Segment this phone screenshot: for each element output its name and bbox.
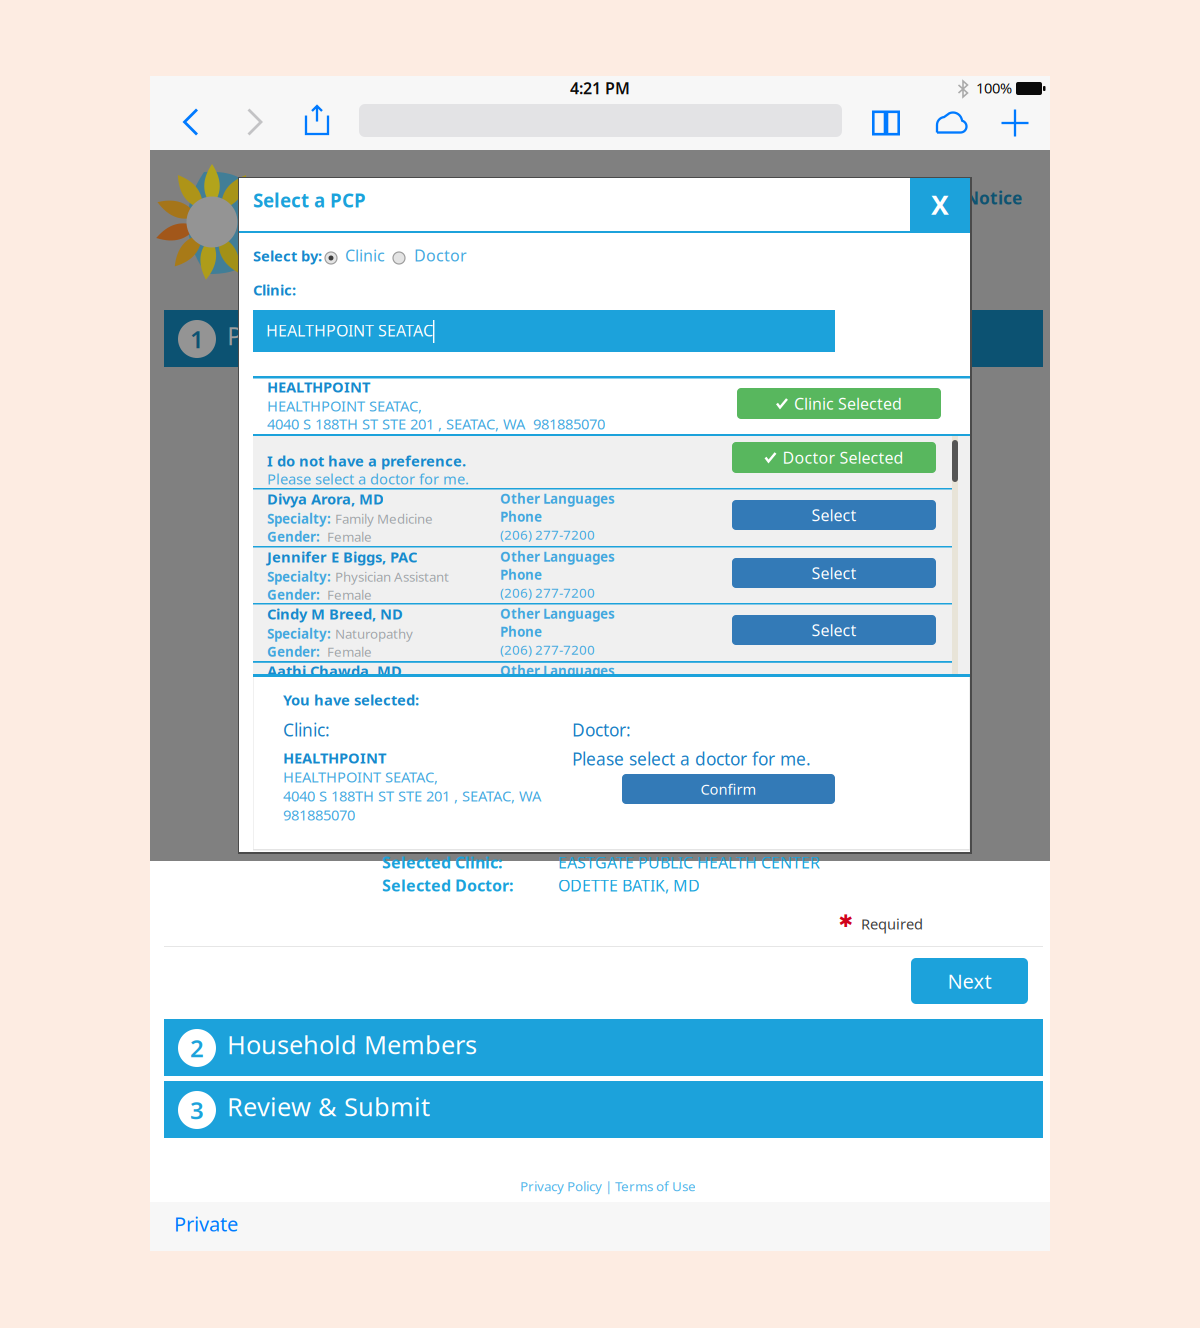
staticText: Selected Doctor: [382, 875, 513, 896]
staticText: Cindy M Breed, ND [267, 604, 403, 624]
staticText: 981885070 [283, 805, 355, 825]
staticText: Gender: [267, 528, 320, 545]
staticText: Divya Arora, MD [267, 489, 384, 509]
staticText: HEALTHPOINT SEATAC [266, 320, 433, 341]
staticText: Household Members [227, 1028, 477, 1061]
staticText: X [931, 187, 949, 222]
staticText: Specialty: [267, 510, 331, 527]
staticText: 1 [190, 323, 204, 355]
staticText: I do not have a preference. [267, 451, 466, 471]
button[interactable]: Select [732, 500, 936, 530]
staticText: Other Languages [500, 490, 615, 507]
staticText: HEALTHPOINT [283, 748, 386, 768]
staticText: Review & Submit [227, 1090, 430, 1123]
button[interactable]: Forward [150, 76, 196, 116]
staticText: Select by: [253, 246, 322, 266]
staticText: Selected Clinic: [382, 852, 502, 873]
staticText: Select [811, 619, 856, 641]
staticText: Family Medicine [335, 510, 433, 527]
staticText: Required [861, 914, 923, 934]
staticText: (206) 277-7200 [500, 641, 595, 658]
staticText: 2 [190, 1032, 204, 1064]
staticText: (206) 277-7200 [500, 526, 595, 543]
staticText: 4040 S 188TH ST STE 201 , SEATAC, WA [283, 786, 541, 806]
staticText: ✱ [838, 911, 853, 931]
staticText: Phone [500, 566, 542, 583]
staticText: Female [327, 643, 372, 660]
button[interactable]: Clinic Selected [737, 388, 941, 419]
staticText: Next [947, 968, 991, 994]
button[interactable]: iCloud Tabs [150, 76, 202, 116]
button[interactable]: Share [150, 76, 196, 116]
staticText: 4:21 PM [570, 77, 630, 99]
staticText: Physician Assistant [335, 568, 449, 585]
staticText: EASTGATE PUBLIC HEALTH CENTER [558, 852, 820, 873]
staticText: Clinic: [253, 280, 296, 300]
staticText: You have selected: [283, 690, 419, 710]
staticText: (206) 277-7200 [500, 584, 595, 601]
staticText: Specialty: [267, 568, 331, 585]
staticText: Other Languages [500, 605, 615, 622]
button[interactable]: New Tab [150, 76, 196, 116]
staticText: Select [811, 504, 856, 526]
staticText: Doctor Selected [782, 447, 903, 468]
staticText: Clinic Selected [794, 393, 902, 414]
staticText: Specialty: [267, 625, 331, 642]
staticText: Gender: [267, 586, 320, 603]
staticText: ODETTE BATIK, MD [558, 875, 700, 896]
staticText: Female [327, 586, 372, 603]
button[interactable]: Select [732, 615, 936, 645]
staticText: PCP Selection [227, 319, 388, 352]
button[interactable]: Select [732, 558, 936, 588]
staticText: Clinic [345, 245, 385, 266]
button[interactable]: Privacy Policy | Terms of Use [150, 861, 550, 881]
button[interactable]: Back [150, 76, 196, 116]
staticText: HEALTHPOINT SEATAC, [267, 396, 422, 416]
staticText: Other Languages [500, 548, 615, 565]
staticText: Privacy Notice [897, 186, 1022, 209]
staticText: HEALTHPOINT SEATAC, [283, 767, 438, 787]
button[interactable]: Confirm [239, 178, 452, 208]
staticText: Select a PCP [253, 188, 366, 213]
button[interactable]: 2 [150, 861, 1029, 918]
staticText: Doctor: [572, 718, 631, 741]
button[interactable]: 3 [150, 861, 1029, 918]
staticText: HEALTHPOINT [267, 377, 370, 397]
staticText: Phone [500, 508, 542, 525]
staticText: Gender: [267, 643, 320, 660]
button[interactable]: Doctor Selected [732, 442, 936, 473]
staticText: Privacy Policy | Terms of Use [520, 1177, 696, 1195]
staticText: Please select a doctor for me. [267, 469, 469, 489]
staticText: 4040 S 188TH ST STE 201 , SEATAC, WA 981… [267, 414, 605, 434]
staticText: Doctor [414, 245, 467, 266]
staticText: Confirm [700, 779, 756, 799]
staticText: Female [327, 528, 372, 545]
staticText: Other Languages [500, 662, 615, 679]
button[interactable]: Close [239, 178, 299, 231]
staticText: Select [811, 562, 856, 584]
staticText: Jennifer E Biggs, PAC [267, 547, 417, 567]
staticText: Aathi Chawda, MD [267, 661, 402, 681]
staticText: 100% [976, 78, 1012, 98]
staticText: Phone [500, 623, 542, 640]
staticText: 3 [190, 1094, 204, 1126]
button[interactable]: Bookmarks [150, 76, 196, 116]
staticText: Please select a doctor for me. [572, 747, 811, 770]
staticText: Private [174, 1210, 238, 1237]
staticText: Naturopathy [335, 625, 413, 642]
staticText: Clinic: [283, 718, 330, 741]
